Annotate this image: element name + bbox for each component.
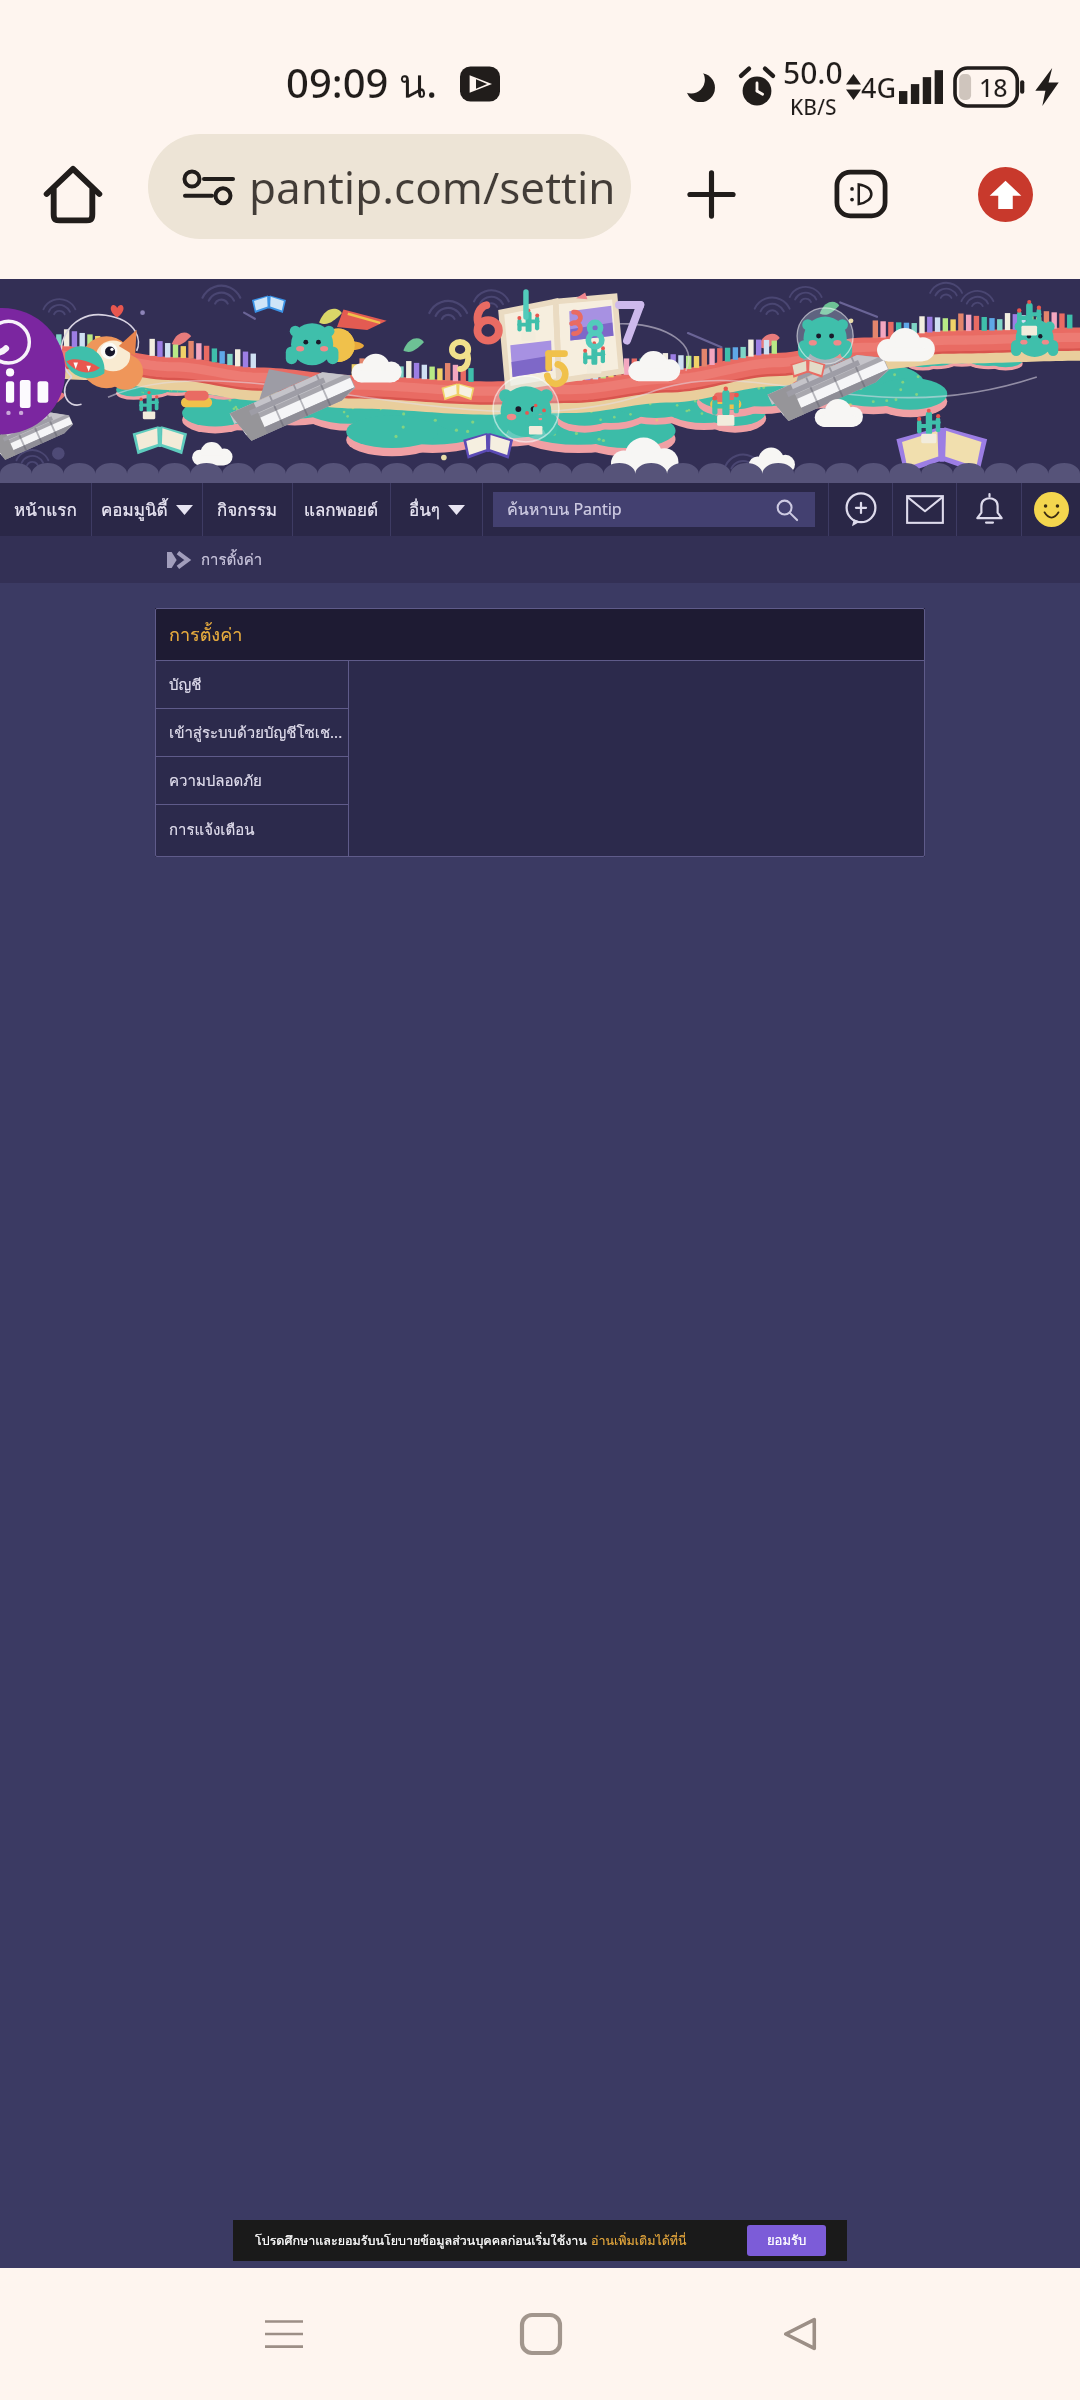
staticText: หน้าแรก (14, 496, 77, 523)
button[interactable]: Notifications (957, 483, 1021, 536)
button[interactable]: กิจกรรม (203, 483, 292, 536)
button[interactable]: Scroll to top (958, 147, 1052, 241)
staticText: คอมมูนิตี้ (101, 496, 168, 523)
button[interactable]: Create post (829, 483, 892, 536)
staticText: อ่านเพิ่มเติมได้ที่นี่ (591, 2231, 687, 2251)
staticText: การแจ้งเตือน (169, 818, 255, 842)
button[interactable]: Recents (234, 2284, 334, 2384)
staticText: ความปลอดภัย (169, 769, 262, 793)
button[interactable]: หน้าแรก (0, 483, 91, 536)
button[interactable]: Home (491, 2284, 591, 2384)
button[interactable]: ความปลอดภัย (155, 757, 348, 805)
staticText: KB/S (790, 93, 837, 122)
staticText: บัญชี (169, 673, 202, 697)
staticText: แลกพอยต์ (304, 496, 379, 523)
staticText: ค้นหาบน Pantip (507, 497, 622, 522)
button[interactable]: pantip.com/settin (148, 134, 631, 239)
staticText: pantip.com/settin (249, 157, 616, 217)
staticText: โปรดศึกษาและยอมรับนโยบายข้อมูลส่วนบุคคลก… (255, 2231, 591, 2251)
staticText: การตั้งค่า (169, 620, 243, 649)
button[interactable]: บัญชี (155, 661, 348, 709)
button[interactable]: Account (1022, 483, 1080, 536)
button[interactable]: แลกพอยต์ (293, 483, 390, 536)
button[interactable]: อื่นๆ (391, 483, 482, 536)
staticText: 18 (979, 70, 1008, 104)
button[interactable]: Back (750, 2284, 850, 2384)
staticText: เข้าสู่ระบบด้วยบัญชีโซเช... (169, 721, 343, 745)
button[interactable]: ค้นหาบน Pantip (493, 492, 815, 527)
button[interactable]: เข้าสู่ระบบด้วยบัญชีโซเช... (155, 709, 348, 757)
staticText: 09:09 น. (286, 52, 438, 116)
button[interactable]: Messages (893, 483, 956, 536)
button[interactable]: Home (26, 147, 120, 241)
button[interactable]: New tab (664, 147, 758, 241)
button[interactable]: Tabs (814, 147, 908, 241)
button[interactable]: การแจ้งเตือน (155, 805, 348, 854)
button[interactable]: ยอมรับ (747, 2225, 826, 2256)
staticText: 4G (861, 69, 897, 106)
staticText: กิจกรรม (217, 496, 278, 523)
staticText: ยอมรับ (767, 2230, 807, 2251)
staticText: 50.0 (783, 52, 843, 93)
button[interactable]: คอมมูนิตี้ (92, 483, 202, 536)
staticText: การตั้งค่า (201, 548, 263, 572)
staticText: อื่นๆ (409, 496, 440, 523)
